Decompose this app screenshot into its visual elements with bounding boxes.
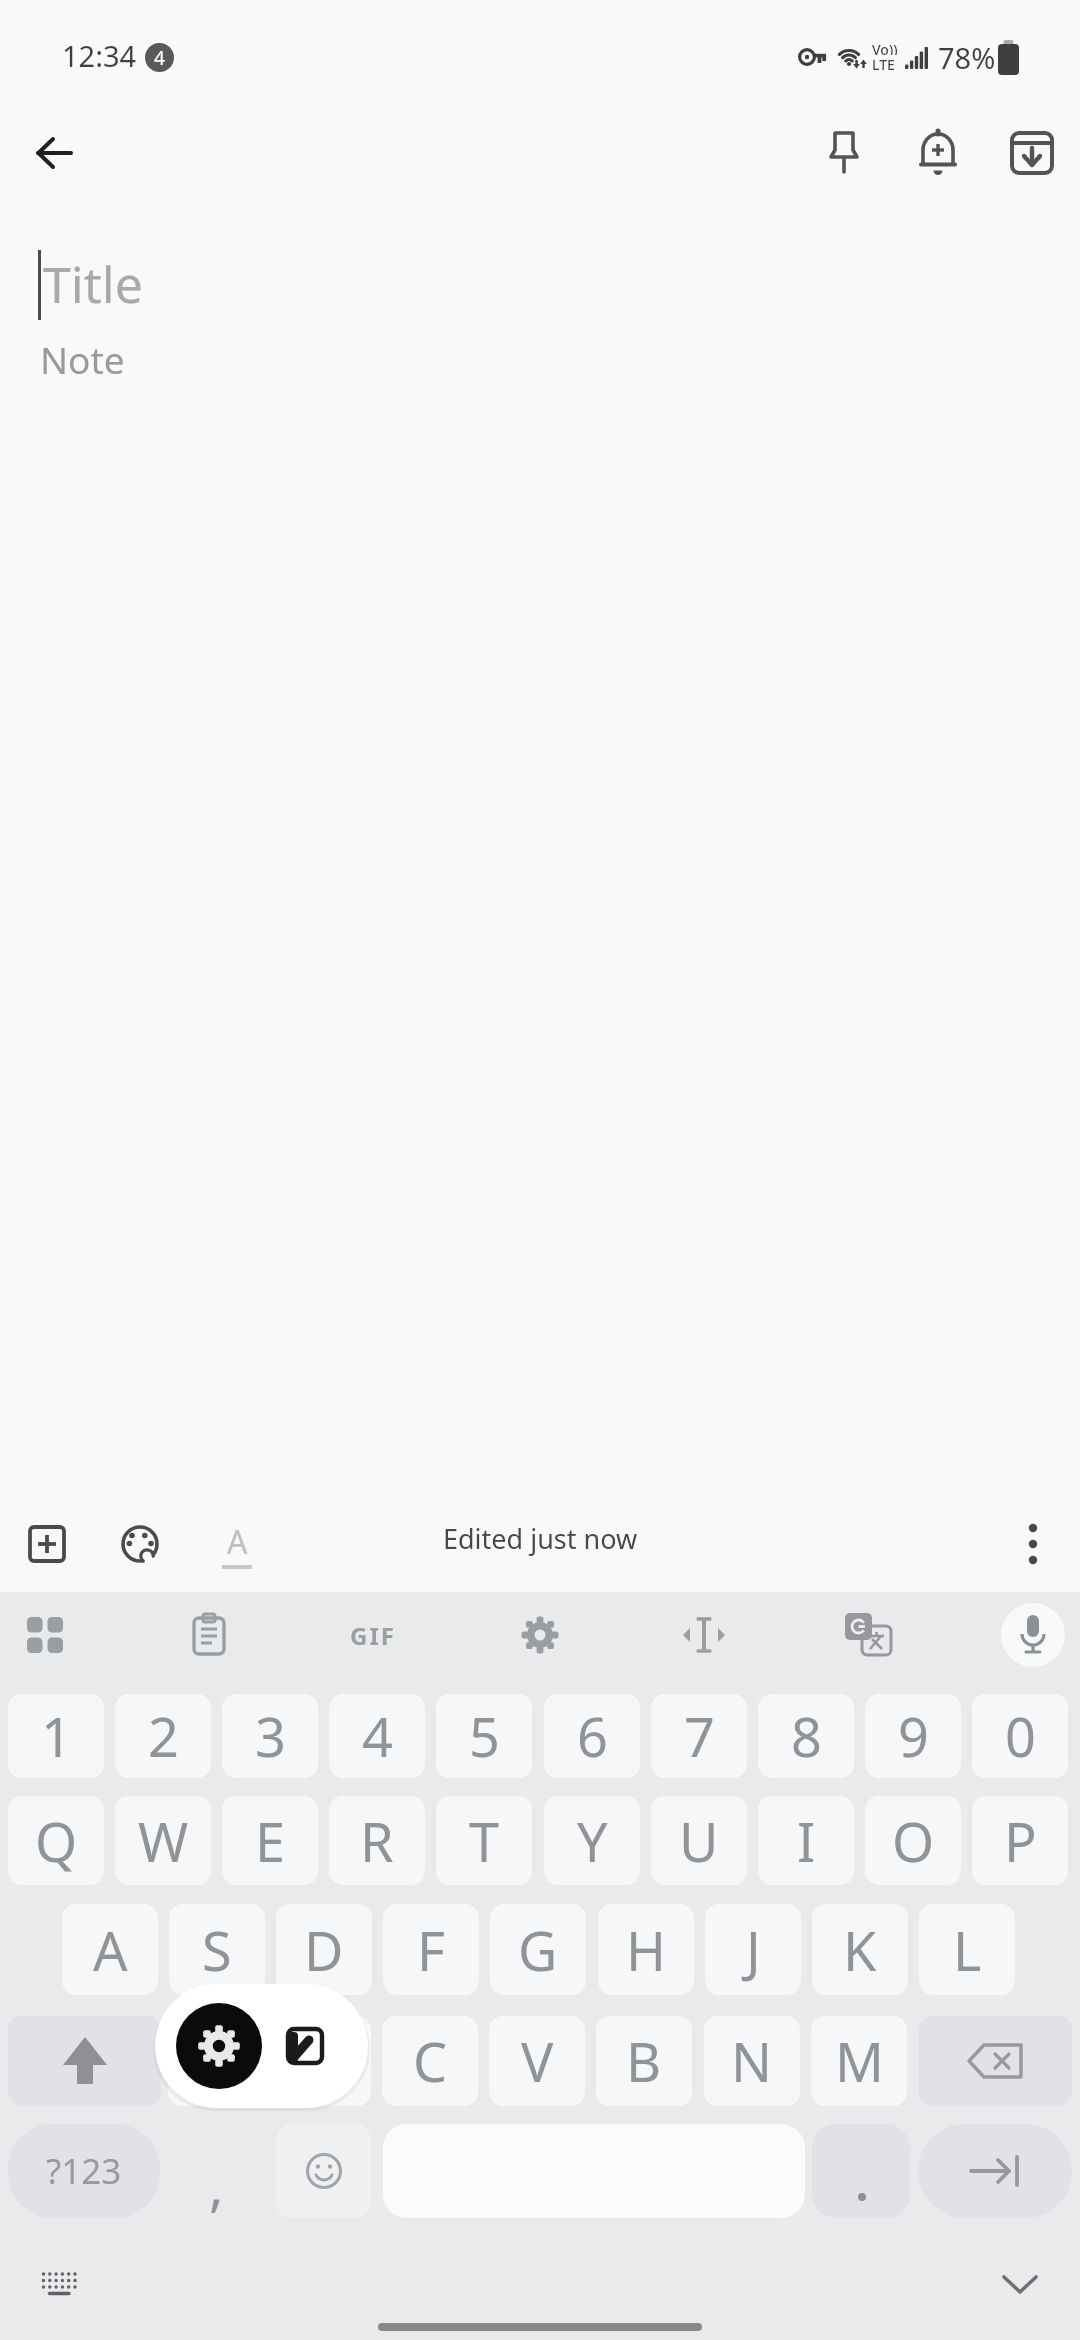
button[interactable]: 8 [758, 1694, 854, 1778]
button[interactable] [988, 2253, 1052, 2317]
staticText: N [731, 2024, 773, 2098]
button[interactable] [812, 2124, 910, 2218]
button[interactable]: GIF [341, 1603, 405, 1667]
button[interactable]: P [972, 1796, 1068, 1885]
staticText: A [227, 1520, 248, 1564]
staticText: Edited just now [443, 1520, 638, 1557]
button[interactable] [27, 2253, 91, 2317]
button[interactable]: Q [8, 1796, 104, 1885]
staticText: 0 [1005, 1699, 1036, 1773]
button[interactable] [919, 2016, 1072, 2106]
button[interactable]: 7 [651, 1694, 747, 1778]
staticText: 3 [255, 1699, 286, 1773]
button[interactable]: V [489, 2016, 585, 2106]
button[interactable]: W [115, 1796, 211, 1885]
staticText: 5 [469, 1699, 500, 1773]
button[interactable]: 2 [115, 1694, 211, 1778]
button[interactable]: 9 [865, 1694, 961, 1778]
button[interactable] [273, 2006, 337, 2086]
button[interactable]: , [168, 2124, 264, 2218]
button[interactable] [918, 2124, 1072, 2218]
button[interactable] [812, 121, 876, 185]
staticText: Title [43, 250, 143, 312]
button[interactable] [508, 1603, 572, 1667]
staticText: Q [35, 1804, 78, 1878]
staticText: Z [201, 2024, 232, 2098]
button[interactable]: M [811, 2016, 907, 2106]
staticText: D [304, 1913, 344, 1987]
button[interactable]: K [812, 1904, 908, 1995]
button[interactable] [8, 2016, 161, 2106]
staticText: O [892, 1804, 935, 1878]
button[interactable]: 6 [544, 1694, 640, 1778]
button[interactable]: F [383, 1904, 479, 1995]
button[interactable] [177, 1603, 241, 1667]
button[interactable] [1001, 1603, 1065, 1667]
button[interactable]: J [705, 1904, 801, 1995]
button[interactable]: D [276, 1904, 372, 1995]
button[interactable]: R [329, 1796, 425, 1885]
button[interactable]: A [205, 1512, 269, 1576]
staticText: 9 [898, 1699, 929, 1773]
button[interactable]: A [62, 1904, 158, 1995]
button[interactable]: Y [544, 1796, 640, 1885]
button[interactable]: S [169, 1904, 265, 1995]
staticText: LTE [872, 55, 895, 70]
staticText: 7 [684, 1699, 715, 1773]
button[interactable]: Z [168, 2016, 264, 2106]
button[interactable]: 0 [972, 1694, 1068, 1778]
staticText: 78% [938, 38, 996, 74]
staticText: T [469, 1804, 500, 1878]
button[interactable] [1001, 1512, 1065, 1576]
button[interactable] [23, 121, 87, 185]
button[interactable]: N [704, 2016, 800, 2106]
button[interactable]: ?123 [8, 2124, 160, 2218]
staticText: 1 [41, 1699, 72, 1773]
staticText: A [93, 1913, 128, 1987]
button[interactable] [1000, 121, 1064, 185]
staticText: ?123 [46, 2147, 122, 2195]
button[interactable]: 1 [8, 1694, 104, 1778]
button[interactable]: 3 [222, 1694, 318, 1778]
staticText: Vo)) [872, 40, 898, 55]
button[interactable]: U [651, 1796, 747, 1885]
button[interactable]: L [919, 1904, 1015, 1995]
button[interactable]: C [382, 2016, 478, 2106]
button[interactable] [672, 1603, 736, 1667]
button[interactable] [13, 1603, 77, 1667]
staticText: W [138, 1804, 189, 1878]
button[interactable] [176, 2003, 262, 2089]
staticText: G [518, 1913, 558, 1987]
staticText: B [626, 2024, 662, 2098]
button[interactable] [276, 2124, 371, 2218]
staticText: U [679, 1804, 719, 1878]
button[interactable] [108, 1512, 172, 1576]
button[interactable]: O [865, 1796, 961, 1885]
button[interactable]: B [596, 2016, 692, 2106]
button[interactable] [15, 1512, 79, 1576]
button[interactable]: T [436, 1796, 532, 1885]
staticText: I [797, 1804, 816, 1878]
staticText: C [413, 2024, 448, 2098]
staticText: 4 [362, 1699, 393, 1773]
button[interactable] [836, 1603, 900, 1667]
staticText: Y [577, 1804, 608, 1878]
button[interactable] [906, 121, 970, 185]
staticText: , [209, 2148, 224, 2222]
staticText: P [1004, 1804, 1037, 1878]
staticText: 12:34 [62, 36, 137, 72]
staticText: GIF [350, 1619, 396, 1652]
staticText: 4 [154, 45, 165, 71]
button[interactable]: 5 [436, 1694, 532, 1778]
button[interactable]: G [490, 1904, 586, 1995]
staticText: J [746, 1913, 761, 1987]
staticText: 2 [148, 1699, 179, 1773]
button[interactable]: H [598, 1904, 694, 1995]
staticText: Note [40, 334, 125, 378]
button[interactable]: I [758, 1796, 854, 1885]
button[interactable]: X [275, 2016, 371, 2106]
button[interactable]: E [222, 1796, 318, 1885]
staticText: M [835, 2024, 884, 2098]
button[interactable]: 4 [329, 1694, 425, 1778]
